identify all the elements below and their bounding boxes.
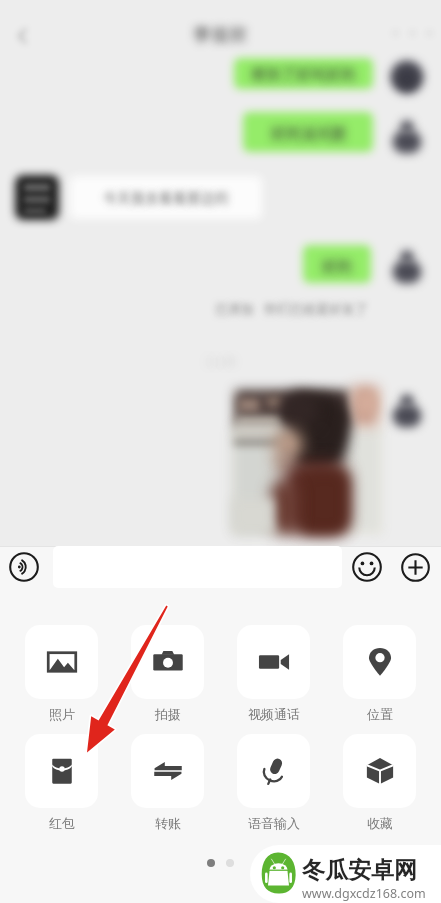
button[interactable]: 视频通话	[237, 625, 310, 722]
staticText: 转账	[155, 815, 181, 831]
staticText: www.dgxcdz168.com	[302, 885, 426, 902]
staticText: 照片	[49, 706, 75, 722]
button[interactable]: 红包	[25, 734, 98, 831]
button[interactable]: 位置	[343, 625, 416, 722]
staticText: 冬瓜安卓网	[302, 856, 417, 885]
button[interactable]: 照片	[25, 625, 98, 722]
button[interactable]: More options	[398, 550, 432, 584]
staticText: 视频通话	[248, 706, 300, 722]
button[interactable]: 拍摄	[131, 625, 204, 722]
button[interactable]: 转账	[131, 734, 204, 831]
staticText: 拍摄	[155, 706, 181, 722]
button[interactable]: Emoji	[350, 550, 384, 584]
staticText: 收藏	[367, 815, 393, 831]
staticText: 红包	[49, 815, 75, 831]
button[interactable]: 收藏	[343, 734, 416, 831]
staticText: 语音输入	[248, 815, 300, 831]
button[interactable]: Voice message	[6, 549, 42, 585]
staticText: 位置	[367, 706, 393, 722]
button[interactable]: 语音输入	[237, 734, 310, 831]
